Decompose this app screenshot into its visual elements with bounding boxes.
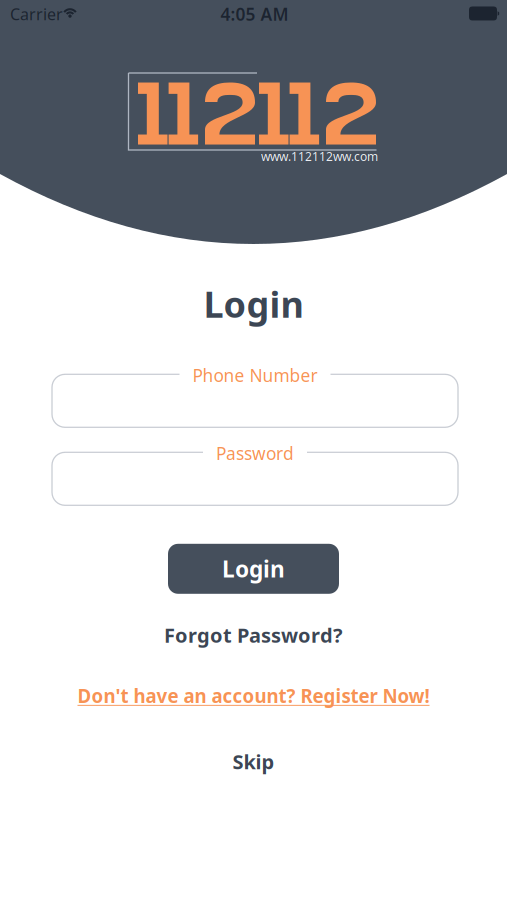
button[interactable]: Login [168,544,339,594]
staticText: www.112112ww.com [261,148,378,164]
staticText: Login [203,280,303,328]
button[interactable]: Don't have an account? Register Now! [77,683,429,708]
staticText: Login [222,554,285,584]
staticText: Password [216,442,294,465]
button[interactable]: Forgot Password? [164,622,343,648]
staticText: Phone Number [192,364,317,387]
staticText: 4:05 AM [220,2,288,25]
staticText: Don't have an account? Register Now! [77,683,429,708]
staticText: Carrier [10,3,63,25]
staticText: Forgot Password? [164,622,343,648]
button[interactable]: Skip [232,748,274,775]
staticText: Skip [232,748,274,775]
